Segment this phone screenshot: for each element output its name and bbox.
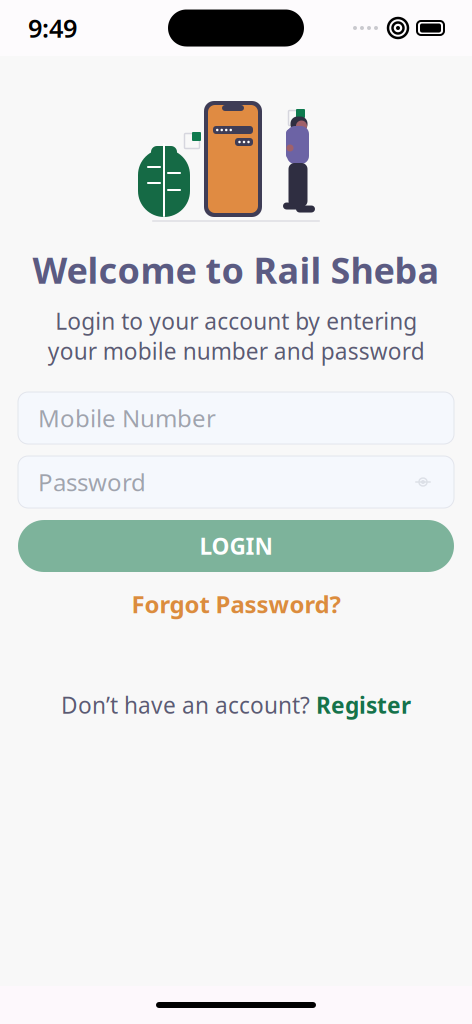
staticText: 9:49 bbox=[28, 11, 77, 45]
staticText: Password bbox=[38, 466, 146, 498]
button[interactable]: LOGIN bbox=[18, 520, 454, 572]
staticText: Mobile Number bbox=[38, 402, 216, 434]
staticText: Login to your account by entering your m… bbox=[47, 306, 424, 366]
staticText: Welcome to Rail Sheba bbox=[32, 246, 439, 294]
staticText: Forgot Password? bbox=[131, 588, 340, 620]
staticText: Don’t have an account? bbox=[61, 690, 310, 720]
staticText: Register bbox=[316, 690, 411, 720]
staticText: LOGIN bbox=[199, 531, 272, 561]
button[interactable]: Show password bbox=[412, 471, 434, 493]
button[interactable]: Forgot Password? bbox=[117, 580, 354, 628]
button[interactable]: Don’t have an account? bbox=[61, 682, 411, 728]
